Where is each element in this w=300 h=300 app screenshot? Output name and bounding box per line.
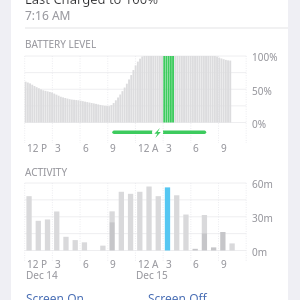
staticText: 60m — [252, 177, 273, 191]
staticText: Dec 14 — [26, 268, 58, 282]
staticText: 12 A — [138, 141, 159, 155]
staticText: 0m — [252, 245, 268, 259]
staticText: 30m — [252, 211, 273, 225]
staticText: 100% — [252, 50, 278, 64]
staticText: 3 — [166, 257, 172, 271]
staticText: 9 — [110, 141, 116, 155]
staticText: Dec 15 — [136, 268, 168, 282]
staticText: 6 — [193, 257, 199, 271]
staticText: 7:16 AM — [25, 7, 71, 23]
staticText: 6 — [83, 141, 89, 155]
staticText: 9 — [110, 257, 116, 271]
staticText: 0% — [252, 117, 267, 131]
staticText: 3 — [166, 141, 172, 155]
button[interactable]: Screen On — [26, 290, 84, 300]
staticText: ACTIVITY — [25, 165, 68, 179]
staticText: 50% — [252, 84, 272, 98]
staticText: 6 — [193, 141, 199, 155]
staticText: 6 — [83, 257, 89, 271]
staticText: 12 A — [138, 257, 159, 271]
staticText: 3 — [55, 257, 61, 271]
staticText: 9 — [221, 257, 227, 271]
staticText: 12 P — [27, 141, 48, 155]
staticText: Last Charged to 100% — [25, 0, 158, 8]
button[interactable]: Screen Off — [148, 290, 207, 300]
staticText: 9 — [221, 141, 227, 155]
staticText: 3 — [55, 141, 61, 155]
staticText: 12 P — [27, 257, 48, 271]
staticText: BATTERY LEVEL — [25, 37, 97, 51]
